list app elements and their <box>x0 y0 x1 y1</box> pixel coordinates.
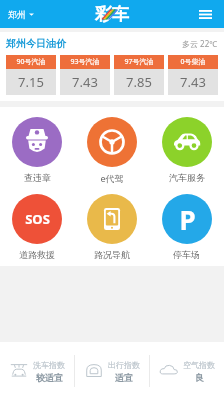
button[interactable]: e代驾 <box>74 117 149 184</box>
staticText: 郑州 <box>8 9 26 20</box>
staticText: 7.15 <box>18 73 44 91</box>
staticText: 汽车服务 <box>169 172 205 183</box>
button[interactable]: 90号汽油 <box>6 55 56 95</box>
button[interactable]: P <box>149 194 224 260</box>
staticText: 洗车指数 <box>33 360 65 370</box>
staticText: 良 <box>195 372 204 383</box>
button[interactable]: 97号汽油 <box>114 55 164 95</box>
button[interactable]: 查违章 <box>0 117 74 183</box>
button[interactable]: 0号柴油 <box>168 55 218 95</box>
staticText: SOS <box>25 210 50 228</box>
staticText: 空气指数 <box>183 360 215 370</box>
button[interactable]: 洗车指数 <box>0 342 74 400</box>
staticText: 适宜 <box>115 372 133 383</box>
staticText: P <box>179 202 196 237</box>
staticText: 93号汽油 <box>70 57 100 67</box>
staticText: 7.85 <box>126 73 152 91</box>
staticText: 郑州今日油价 <box>6 37 66 50</box>
button[interactable]: 郑州 <box>6 5 36 24</box>
button[interactable]: 空气指数 <box>150 342 224 400</box>
staticText: 道路救援 <box>19 249 55 260</box>
staticText: 0号柴油 <box>180 57 206 67</box>
staticText: 7.43 <box>72 73 98 91</box>
button[interactable]: Menu <box>194 3 216 25</box>
staticText: 出行指数 <box>108 360 140 370</box>
button[interactable]: 出行指数 <box>75 342 149 400</box>
staticText: 多云 22℃ <box>182 38 218 49</box>
button[interactable]: SOS <box>0 194 74 260</box>
button[interactable]: 路况导航 <box>74 194 149 260</box>
staticText: 7.43 <box>180 73 206 91</box>
button[interactable]: 93号汽油 <box>60 55 110 95</box>
staticText: 停车场 <box>173 249 200 260</box>
staticText: e代驾 <box>100 172 124 184</box>
staticText: 较适宜 <box>36 372 63 383</box>
staticText: 90号汽油 <box>16 57 46 67</box>
staticText: 路况导航 <box>94 249 130 260</box>
staticText: 彩车 <box>95 4 129 25</box>
staticText: 97号汽油 <box>124 57 154 67</box>
staticText: 查违章 <box>24 172 51 183</box>
button[interactable]: 汽车服务 <box>149 117 224 183</box>
